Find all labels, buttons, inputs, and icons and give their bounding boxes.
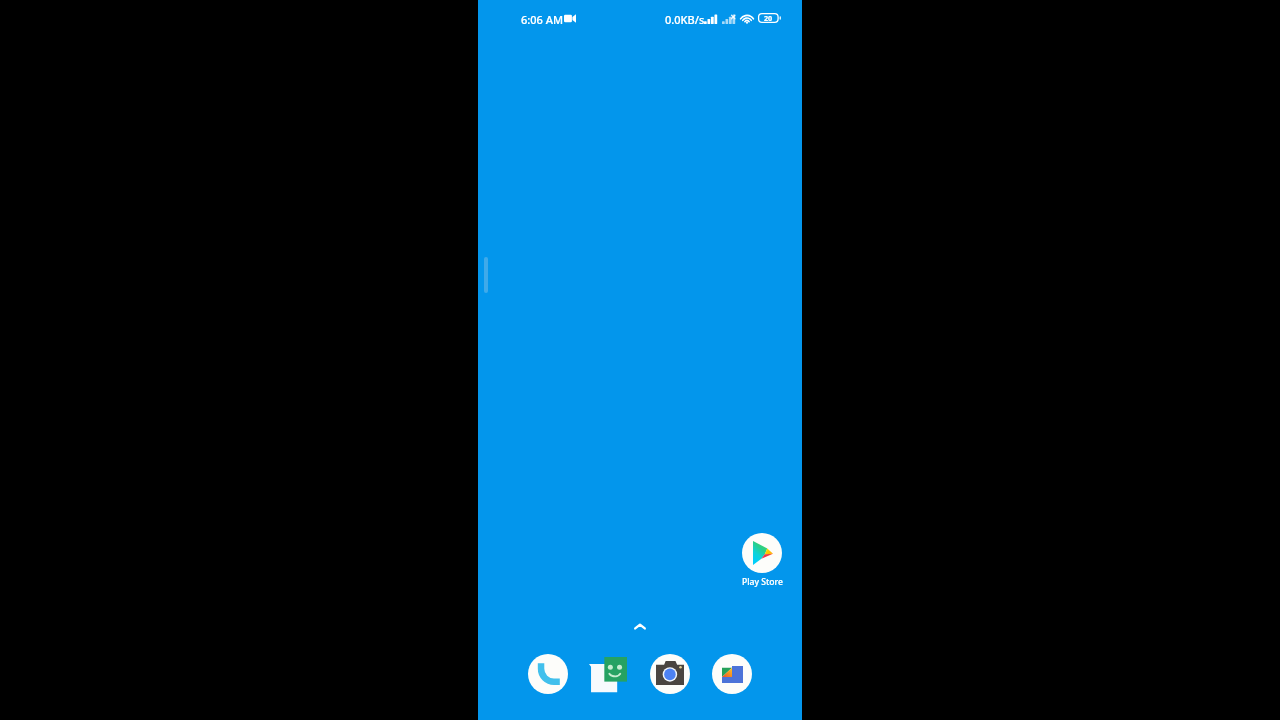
button[interactable]: Open side bar xyxy=(484,257,488,293)
button[interactable]: Camera xyxy=(648,652,692,696)
staticText: 6:06 AM xyxy=(521,12,564,27)
button[interactable]: Open app drawer xyxy=(632,621,648,633)
staticText: 0.0KB/s xyxy=(665,12,705,27)
staticText: Play Store xyxy=(742,576,783,588)
button[interactable]: Play Store xyxy=(732,533,792,588)
button[interactable]: Messages xyxy=(586,652,630,696)
button[interactable]: Phone xyxy=(526,652,570,696)
button[interactable]: Files xyxy=(710,652,754,696)
staticText: 20 xyxy=(764,13,773,23)
